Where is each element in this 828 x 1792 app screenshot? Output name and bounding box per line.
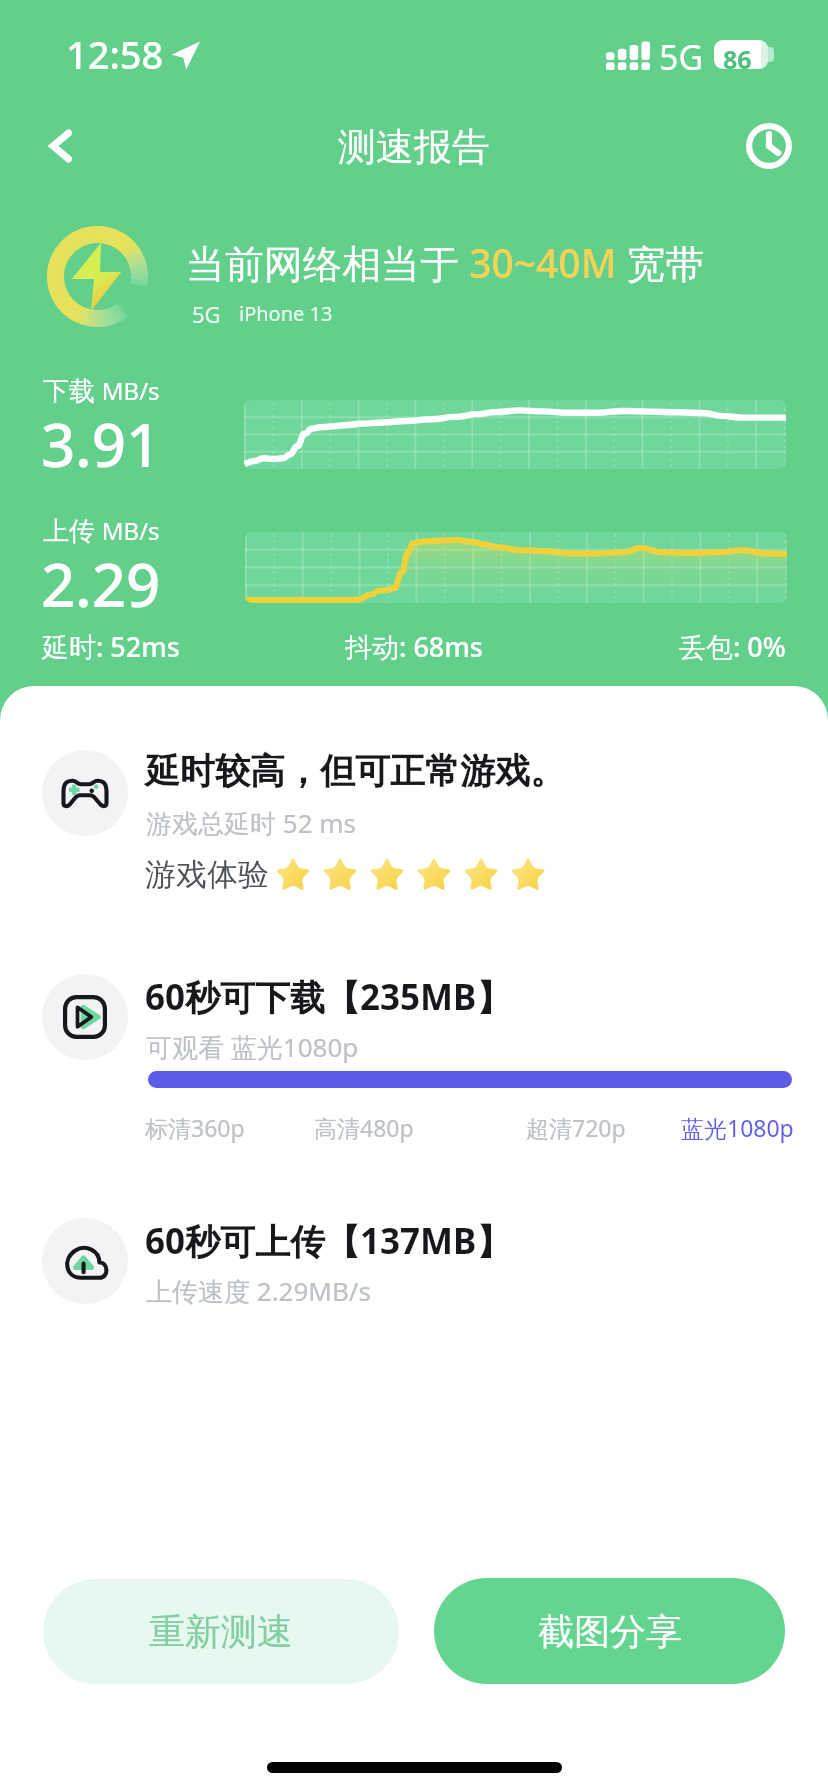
staticText: 高清480p — [314, 1112, 414, 1143]
staticText: 5G — [192, 299, 221, 329]
staticText: 60秒可上传【137MB】 — [145, 1217, 512, 1265]
staticText: 游戏体验 — [145, 855, 269, 894]
staticText: 延时较高，但可正常游戏。 — [145, 749, 565, 793]
staticText: 上传速度 2.29MB/s — [146, 1273, 371, 1309]
staticText: 丢包: 0% — [679, 628, 786, 665]
button[interactable]: Back — [21, 106, 101, 186]
staticText: 测速报告 — [0, 123, 828, 171]
staticText: 游戏总延时 52 ms — [146, 805, 357, 841]
staticText: 86 — [723, 42, 752, 69]
staticText: 蓝光1080p — [681, 1112, 794, 1143]
button[interactable]: 截图分享 — [434, 1578, 785, 1684]
staticText: 下载 MB/s — [43, 372, 160, 408]
button[interactable]: 重新测速 — [43, 1579, 399, 1684]
staticText: 当前网络相当于 30~40M 宽带 — [186, 236, 705, 289]
button[interactable]: History — [729, 106, 809, 186]
staticText: 12:58 — [66, 28, 164, 80]
staticText: 重新测速 — [149, 1609, 293, 1654]
button[interactable]: 延时较高，但可正常游戏。 — [0, 738, 828, 910]
staticText: iPhone 13 — [239, 300, 333, 327]
button[interactable]: 60秒可上传【137MB】 — [0, 1206, 828, 1322]
staticText: 2.29 — [41, 543, 161, 625]
staticText: 截图分享 — [538, 1609, 682, 1654]
staticText: 标清360p — [145, 1112, 245, 1143]
staticText: 可观看 蓝光1080p — [146, 1029, 359, 1065]
staticText: 上传 MB/s — [43, 512, 160, 548]
button[interactable]: 60秒可下载【235MB】 — [0, 962, 828, 1154]
staticText: 延时: 52ms — [42, 628, 180, 665]
staticText: 3.91 — [41, 403, 161, 485]
staticText: 60秒可下载【235MB】 — [145, 973, 512, 1021]
staticText: 5G — [659, 34, 704, 80]
staticText: 抖动: 68ms — [0, 628, 828, 665]
staticText: 超清720p — [526, 1112, 626, 1143]
